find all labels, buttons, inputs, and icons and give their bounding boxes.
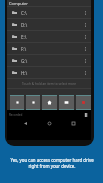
- button[interactable]: More options: [83, 46, 88, 51]
- button[interactable]: Home: [42, 95, 57, 110]
- staticText: D:\: [21, 22, 28, 28]
- button[interactable]: Cut: [10, 95, 24, 110]
- button[interactable]: Back: [21, 119, 30, 128]
- button[interactable]: More options: [83, 22, 88, 27]
- staticText: Yes, you can access computer hard drive: [10, 157, 94, 163]
- button[interactable]: D:\: [7, 19, 91, 30]
- button[interactable]: More options: [83, 58, 88, 63]
- button[interactable]: More options: [83, 10, 88, 15]
- staticText: Computer: [9, 1, 28, 6]
- button[interactable]: New folder: [59, 95, 74, 110]
- staticText: C:\: [21, 10, 27, 16]
- button[interactable]: Delete: [76, 95, 91, 110]
- button[interactable]: Home: [45, 119, 54, 128]
- staticText: Touch & hold an item to select more: [22, 82, 76, 86]
- button[interactable]: More options: [83, 70, 88, 75]
- button[interactable]: G:\: [7, 55, 91, 66]
- staticText: right from your device.: [28, 163, 76, 169]
- button[interactable]: F:\: [7, 43, 91, 54]
- button[interactable]: C:\: [7, 7, 91, 18]
- staticText: E:\: [21, 34, 27, 40]
- staticText: H:\: [21, 70, 28, 76]
- button[interactable]: Recents: [69, 119, 78, 128]
- button[interactable]: Copy: [26, 95, 40, 110]
- button[interactable]: E:\: [7, 31, 91, 42]
- button[interactable]: More options: [83, 34, 88, 39]
- staticText: F:\: [21, 46, 27, 52]
- button[interactable]: H:\: [7, 67, 91, 78]
- button[interactable]: Pause: [82, 111, 89, 118]
- staticText: Recorded: [9, 113, 23, 117]
- staticText: G:\: [21, 58, 28, 64]
